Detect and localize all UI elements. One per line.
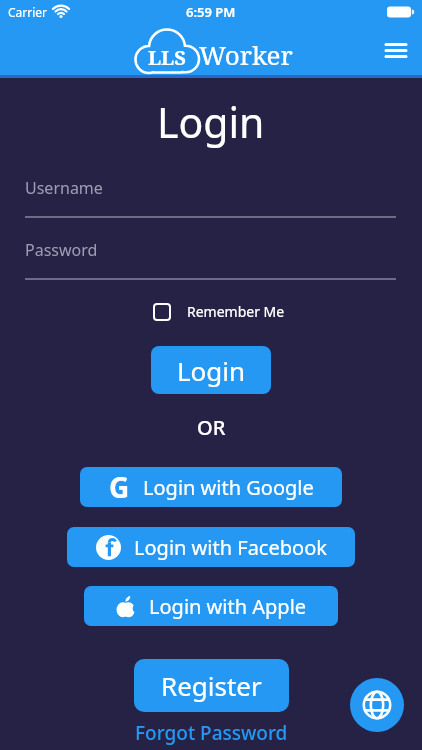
staticText: Forgot Password [135,720,288,746]
staticText: Login [177,353,246,388]
button[interactable]: Remember Me [153,302,285,321]
staticText: Login with Facebook [134,534,327,561]
button[interactable]: G [80,467,342,507]
button[interactable]: Register [134,659,289,712]
staticText: Register [161,668,262,703]
staticText: Password [25,239,98,261]
button[interactable]: Login [151,346,271,394]
button[interactable]: Login with Facebook [67,527,355,567]
staticText: G [109,468,130,506]
button[interactable]: Forgot Password [135,720,288,746]
staticText: Login with Google [143,474,314,501]
staticText: OR [197,414,226,441]
staticText: Carrier [8,4,48,20]
staticText: Worker [199,37,293,72]
staticText: Login with Apple [149,593,307,620]
button[interactable] [350,678,404,732]
staticText: Remember Me [187,302,285,321]
staticText: Login [157,94,265,150]
button[interactable]: Login with Apple [84,586,338,626]
staticText: 6:59 PM [186,3,236,21]
staticText: LLS [148,44,186,71]
staticText: Username [25,177,103,199]
